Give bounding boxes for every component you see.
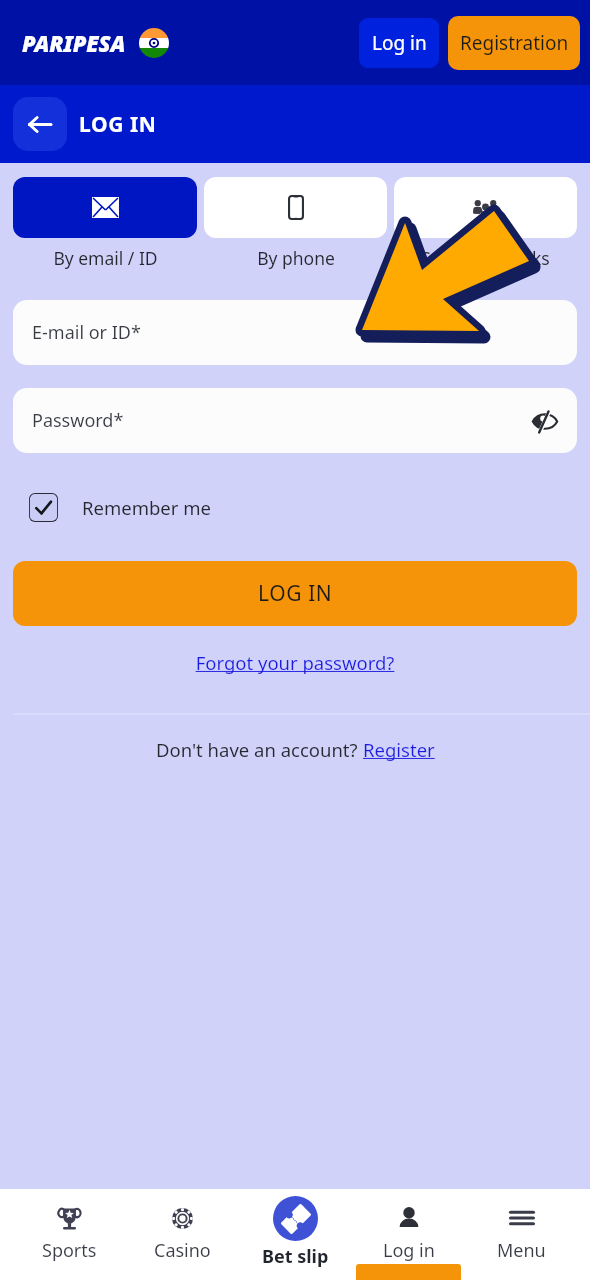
button[interactable]: Social networks [394, 177, 577, 270]
button[interactable]: Casino [126, 1189, 239, 1280]
button[interactable]: Menu [465, 1189, 578, 1280]
button[interactable]: E-mail or ID* [13, 300, 577, 365]
button[interactable]: Register [363, 737, 435, 762]
staticText: Bet slip [262, 1244, 329, 1269]
button[interactable]: Password* [13, 388, 577, 453]
staticText: E-mail or ID* [32, 320, 141, 345]
staticText: Social networks [421, 246, 550, 270]
staticText: Don't have an account? [156, 737, 363, 762]
staticText: By phone [257, 246, 335, 270]
staticText: Log in [372, 30, 427, 56]
staticText: Registration [460, 30, 569, 56]
button[interactable]: By email / ID [13, 177, 197, 270]
button[interactable]: Sports [12, 1189, 126, 1280]
staticText: Casino [154, 1238, 211, 1263]
button[interactable]: Log in [359, 18, 439, 68]
staticText: LOG IN [258, 579, 333, 608]
button[interactable]: Log in [352, 1189, 465, 1280]
button[interactable]: Remember me [29, 493, 211, 522]
button[interactable]: By phone [204, 177, 387, 270]
staticText: PARIPESA [22, 28, 126, 58]
button[interactable]: Show password [527, 403, 563, 439]
staticText: Menu [497, 1238, 546, 1263]
staticText: Password* [32, 408, 124, 433]
button[interactable]: Back [13, 97, 67, 151]
button[interactable]: Bet slip [239, 1189, 352, 1280]
button[interactable]: LOG IN [13, 561, 577, 626]
staticText: By email / ID [53, 246, 158, 270]
staticText: LOG IN [79, 110, 157, 139]
staticText: Remember me [82, 495, 211, 520]
staticText: Sports [42, 1238, 97, 1263]
staticText: Log in [383, 1238, 435, 1263]
button[interactable]: Registration [448, 16, 580, 70]
button[interactable]: Forgot your password? [0, 650, 590, 675]
